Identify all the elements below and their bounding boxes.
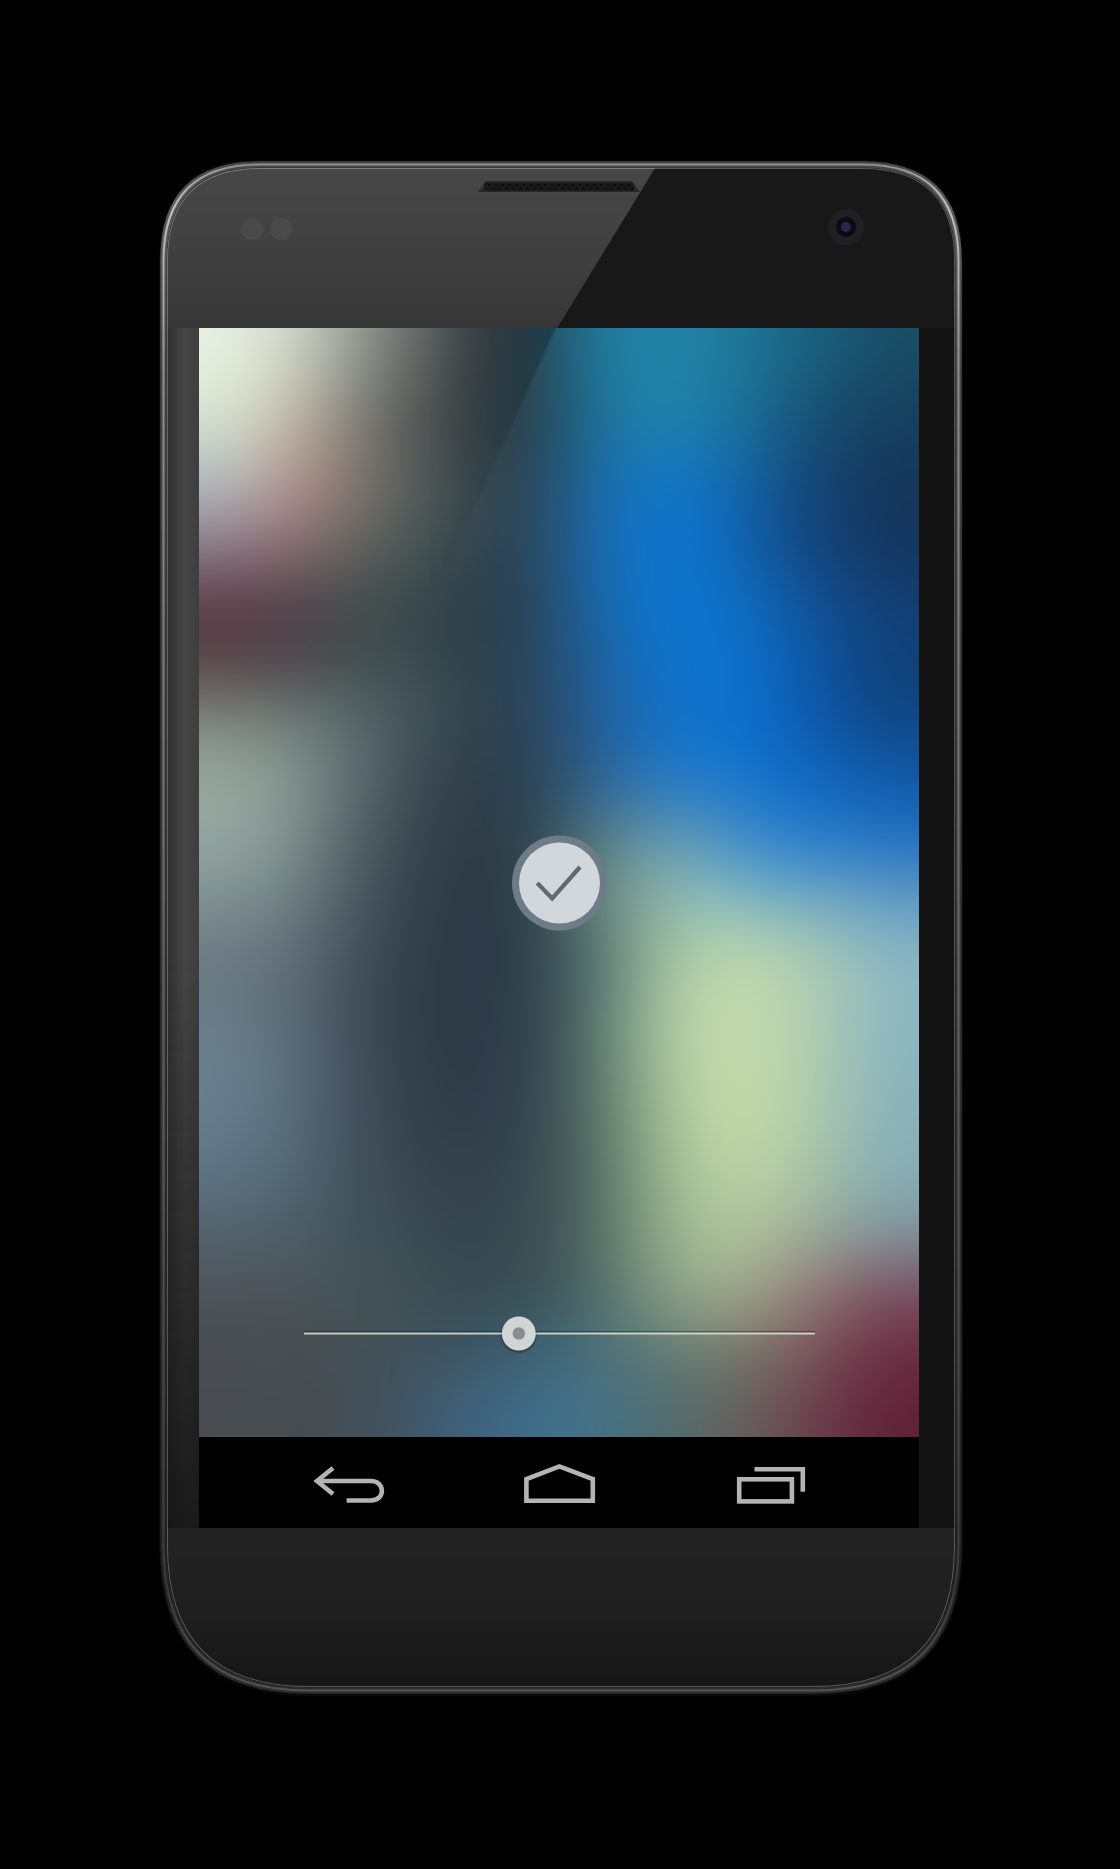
button[interactable]: Confirm — [0, 0, 1120, 1869]
